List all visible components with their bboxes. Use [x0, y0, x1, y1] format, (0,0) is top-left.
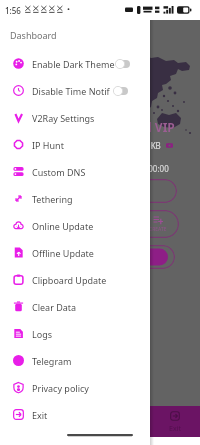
button[interactable]: Exit [155, 406, 195, 437]
staticText: Online Update [32, 220, 94, 232]
staticText: Exit [32, 409, 48, 421]
button[interactable]: Clear Data [0, 293, 150, 320]
button[interactable]: Logs [0, 320, 150, 347]
button[interactable]: Clipboard Update [0, 266, 150, 293]
staticText: Enable Dark Theme [32, 58, 115, 70]
staticText: Offline Update [32, 247, 94, 259]
button[interactable]: Disable Time Notif [0, 77, 150, 104]
staticText: Tethering [32, 193, 73, 205]
button[interactable]: Exit [0, 401, 150, 428]
button[interactable]: Offline Update [0, 239, 150, 266]
staticText: Exit [169, 424, 181, 434]
button[interactable] [31, 245, 175, 269]
button[interactable] [33, 179, 177, 203]
staticText: V2Ray Settings [32, 112, 95, 124]
staticText: Telegram [32, 355, 72, 367]
button[interactable]: V2Ray Settings [0, 104, 150, 131]
button[interactable]: IP Hunt [0, 131, 150, 158]
button[interactable]: Enable Dark Theme [0, 50, 150, 77]
staticText: CREATE [149, 226, 167, 233]
staticText: Clear Data [32, 301, 77, 313]
staticText: Free and VIP [100, 119, 175, 135]
staticText: 0 KB [144, 140, 161, 151]
button[interactable]: Tethering [0, 185, 150, 212]
button[interactable]: CREATE [33, 210, 179, 238]
staticText: 00:00:00 [137, 163, 169, 174]
staticText: IP Hunt [32, 139, 64, 151]
button[interactable]: Online Update [0, 212, 150, 239]
staticText: Privacy policy [32, 382, 89, 394]
staticText: Clipboard Update [32, 274, 107, 286]
staticText: Dashboard [10, 29, 57, 41]
staticText: Custom DNS [32, 166, 86, 178]
button[interactable]: Privacy policy [0, 374, 150, 401]
staticText: Logs [32, 328, 53, 340]
staticText: 1:56 [5, 5, 21, 16]
button[interactable]: Custom DNS [0, 158, 150, 185]
staticText: Disable Time Notif [32, 85, 110, 97]
button[interactable]: Telegram [0, 347, 150, 374]
